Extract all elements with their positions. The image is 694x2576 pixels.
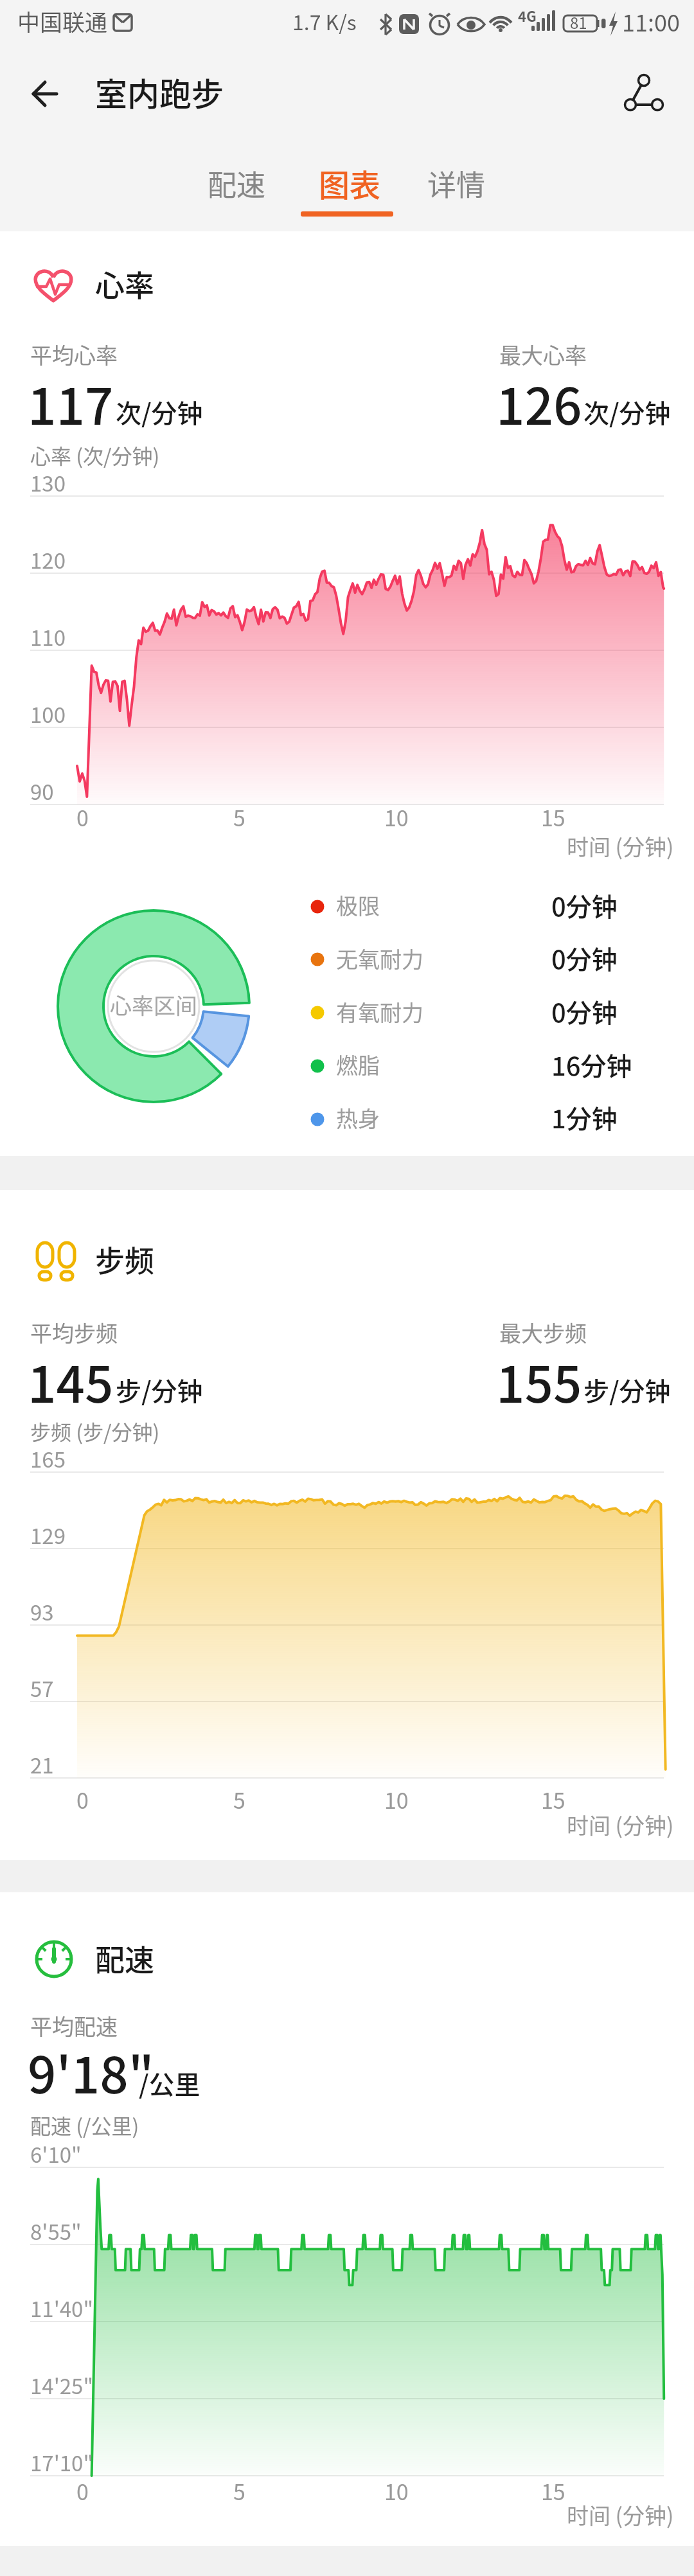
- staticText: 15: [541, 2475, 565, 2507]
- staticText: 平均心率: [30, 339, 118, 370]
- staticText: 0分钟: [551, 939, 618, 977]
- staticText: 步/分钟: [583, 1371, 671, 1408]
- staticText: 155: [496, 1345, 582, 1417]
- staticText: 16分钟: [551, 1046, 632, 1083]
- staticText: 10: [384, 801, 409, 833]
- staticText: 14'25": [30, 2370, 94, 2401]
- staticText: 93: [30, 1596, 54, 1627]
- staticText: 11'40": [30, 2293, 94, 2323]
- staticText: 0: [76, 2475, 89, 2507]
- staticText: 15: [541, 801, 565, 833]
- staticText: 次/分钟: [583, 393, 671, 431]
- staticText: 145: [28, 1345, 114, 1417]
- staticText: 15: [541, 1784, 565, 1815]
- staticText: 步频 (步/分钟): [30, 1416, 160, 1446]
- staticText: 17'10": [30, 2447, 94, 2478]
- staticText: 时间 (分钟): [567, 1809, 674, 1840]
- staticText: 57: [30, 1673, 54, 1703]
- staticText: 10: [384, 2475, 409, 2507]
- staticText: 81: [570, 11, 587, 33]
- staticText: 次/分钟: [116, 393, 203, 431]
- staticText: 129: [30, 1520, 66, 1550]
- staticText: 配速: [95, 1937, 154, 1980]
- staticText: 0分钟: [551, 993, 618, 1030]
- staticText: 步频: [95, 1238, 154, 1281]
- staticText: 平均步频: [30, 1317, 118, 1348]
- staticText: 130: [30, 467, 66, 498]
- staticText: 热身: [336, 1102, 380, 1133]
- staticText: 120: [30, 544, 66, 575]
- staticText: 90: [30, 776, 54, 806]
- staticText: 4G: [518, 5, 537, 26]
- staticText: 心率区间: [110, 989, 197, 1020]
- staticText: 详情: [427, 163, 486, 204]
- staticText: 1分钟: [551, 1099, 618, 1136]
- staticText: 165: [30, 1443, 66, 1474]
- staticText: 中国联通: [17, 4, 108, 37]
- staticText: 10: [384, 1784, 409, 1815]
- staticText: 配速: [208, 163, 266, 204]
- staticText: 1.7 K/s: [292, 6, 357, 36]
- staticText: 有氧耐力: [336, 996, 423, 1027]
- staticText: 时间 (分钟): [567, 830, 674, 862]
- staticText: 图表: [319, 161, 381, 206]
- staticText: 126: [496, 367, 582, 440]
- staticText: 心率: [95, 262, 154, 305]
- staticText: 110: [30, 621, 66, 652]
- staticText: 0: [76, 1784, 89, 1815]
- staticText: 100: [30, 698, 66, 729]
- staticText: 室内跑步: [95, 69, 224, 115]
- staticText: 9'18": [28, 2036, 155, 2108]
- staticText: 5: [233, 2475, 245, 2507]
- staticText: 0: [76, 801, 89, 833]
- staticText: 0分钟: [551, 887, 618, 924]
- staticText: /公里: [139, 2065, 200, 2102]
- staticText: 无氧耐力: [336, 943, 423, 974]
- staticText: 配速 (/公里): [30, 2110, 139, 2140]
- staticText: 平均配速: [30, 2010, 118, 2041]
- staticText: 最大步频: [499, 1317, 587, 1348]
- staticText: 极限: [336, 889, 380, 921]
- staticText: 时间 (分钟): [567, 2499, 674, 2530]
- staticText: 117: [28, 367, 114, 440]
- staticText: 5: [233, 801, 245, 833]
- staticText: 步/分钟: [116, 1371, 203, 1408]
- staticText: 21: [30, 1749, 54, 1780]
- staticText: 6'10": [30, 2138, 82, 2169]
- staticText: 燃脂: [336, 1049, 380, 1080]
- staticText: 最大心率: [499, 339, 587, 370]
- staticText: 5: [233, 1784, 245, 1815]
- staticText: 8'55": [30, 2216, 82, 2246]
- staticText: 11:00: [622, 4, 680, 38]
- staticText: 心率 (次/分钟): [30, 440, 160, 470]
